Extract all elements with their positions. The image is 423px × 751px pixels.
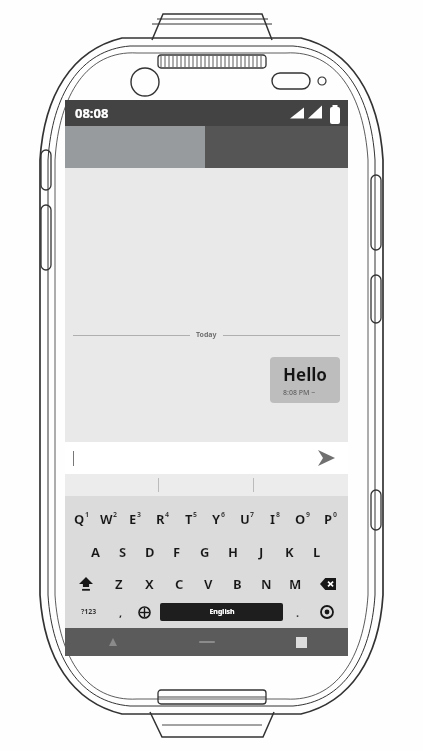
staticText: 5 <box>193 510 198 520</box>
staticText: B <box>233 575 242 593</box>
staticText: 3 <box>137 510 142 520</box>
button[interactable]: S <box>109 540 136 564</box>
staticText: O <box>295 510 306 528</box>
staticText: ?123 <box>81 607 97 617</box>
staticText: P <box>324 510 333 528</box>
button[interactable]: E <box>122 506 149 532</box>
button[interactable]: Voice input <box>309 603 345 621</box>
staticText: 8 <box>276 510 281 520</box>
staticText: Y <box>212 510 221 528</box>
staticText: T <box>185 510 193 528</box>
button[interactable]: D <box>136 540 163 564</box>
staticText: 0 <box>333 510 338 520</box>
button[interactable]: Q <box>68 506 95 532</box>
staticText: W <box>100 510 113 528</box>
button[interactable]: Back <box>65 628 160 656</box>
staticText: U <box>240 510 250 528</box>
staticText: L <box>313 543 321 561</box>
staticText: X <box>145 575 154 593</box>
button[interactable]: M <box>281 572 310 596</box>
button[interactable]: H <box>219 540 247 564</box>
staticText: Today <box>196 330 217 340</box>
button[interactable]: Emoji <box>131 603 157 621</box>
staticText: D <box>145 543 155 561</box>
button[interactable]: R <box>149 506 177 532</box>
button[interactable]: Send <box>312 444 340 472</box>
button[interactable]: J <box>247 540 275 564</box>
staticText: F <box>173 543 181 561</box>
staticText: , <box>119 605 123 620</box>
button[interactable]: V <box>194 572 223 596</box>
button[interactable]: N <box>252 572 281 596</box>
staticText: Hello <box>283 363 327 386</box>
button[interactable]: T <box>177 506 205 532</box>
staticText: R <box>156 510 165 528</box>
button[interactable]: O <box>289 506 317 532</box>
staticText: 6 <box>221 510 226 520</box>
staticText: V <box>204 575 213 593</box>
staticText: 1 <box>85 510 90 520</box>
button[interactable]: Y <box>205 506 233 532</box>
button[interactable]: English <box>160 603 283 621</box>
button[interactable]: C <box>164 572 194 596</box>
button[interactable]: Z <box>104 572 134 596</box>
button[interactable]: Backspace <box>310 572 345 596</box>
staticText: Z <box>115 575 123 593</box>
button[interactable]: B <box>223 572 252 596</box>
staticText: G <box>200 543 210 561</box>
button[interactable]: W <box>95 506 122 532</box>
button[interactable]: X <box>134 572 164 596</box>
staticText: 7 <box>250 510 255 520</box>
staticText: 4 <box>165 510 170 520</box>
staticText: . <box>296 605 300 620</box>
staticText: H <box>228 543 238 561</box>
button[interactable]: Recent apps <box>254 628 348 656</box>
staticText: 8:08 PM ~ <box>283 388 316 398</box>
button[interactable]: ?123 <box>68 603 110 621</box>
button[interactable]: F <box>163 540 191 564</box>
staticText: 08:08 <box>75 104 109 122</box>
button[interactable]: Comma <box>110 603 131 621</box>
staticText: N <box>261 575 272 593</box>
staticText: S <box>119 543 127 561</box>
staticText: I <box>270 510 276 528</box>
button[interactable]: L <box>303 540 331 564</box>
staticText: 2 <box>113 510 118 520</box>
button[interactable]: K <box>275 540 303 564</box>
button[interactable]: I <box>261 506 289 532</box>
staticText: E <box>129 510 137 528</box>
button[interactable]: Hello <box>270 357 340 403</box>
staticText: C <box>175 575 184 593</box>
button[interactable]: U <box>233 506 261 532</box>
staticText: 9 <box>306 510 311 520</box>
button[interactable]: Shift <box>68 572 104 596</box>
staticText: Q <box>74 510 85 528</box>
button[interactable]: Home <box>160 628 254 656</box>
button[interactable]: Period <box>286 603 309 621</box>
staticText: M <box>289 575 302 593</box>
staticText: K <box>285 543 294 561</box>
button[interactable]: P <box>317 506 345 532</box>
button[interactable]: G <box>191 540 219 564</box>
staticText: J <box>259 543 264 561</box>
staticText: A <box>91 543 100 561</box>
staticText: English <box>209 607 235 617</box>
button[interactable]: A <box>82 540 109 564</box>
